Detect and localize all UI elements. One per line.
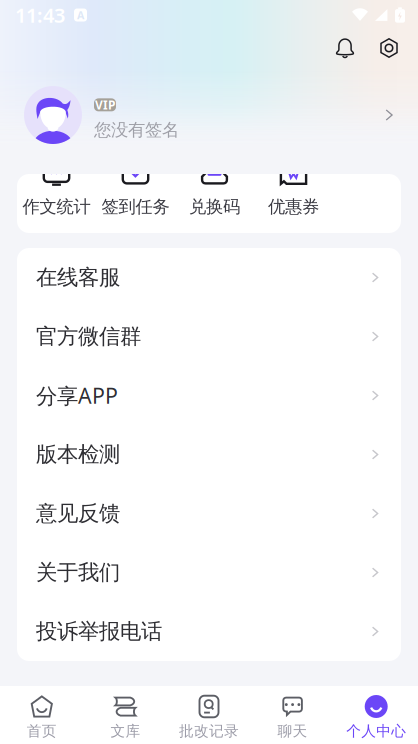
staticText: 投诉举报电话 [36, 618, 162, 645]
button[interactable]: 版本检测 [17, 425, 401, 484]
button[interactable]: Notifications [330, 33, 360, 63]
staticText: 文库 [110, 722, 140, 740]
staticText: 首页 [27, 722, 57, 740]
button[interactable]: 聊天 [251, 695, 334, 735]
button[interactable]: 作文统计 [17, 174, 96, 233]
staticText: 作文统计 [22, 196, 90, 217]
button[interactable]: 投诉举报电话 [17, 602, 401, 661]
staticText: 签到任务 [101, 196, 169, 217]
staticText: 官方微信群 [36, 323, 141, 350]
button[interactable]: 首页 [0, 695, 84, 735]
staticText: 优惠券 [268, 196, 319, 217]
button[interactable]: 文库 [84, 695, 167, 735]
button[interactable]: 分享APP [17, 366, 401, 425]
button[interactable]: 关于我们 [17, 543, 401, 602]
staticText: 关于我们 [36, 559, 120, 586]
button[interactable]: 优惠券 [254, 174, 333, 233]
staticText: 聊天 [278, 722, 308, 740]
button[interactable]: Settings [374, 33, 404, 63]
staticText: A [77, 8, 84, 22]
staticText: 在线客服 [36, 264, 120, 291]
button[interactable]: 兑换码 [175, 174, 254, 233]
button[interactable]: VIP [0, 86, 418, 154]
button[interactable]: 批改记录 [167, 695, 251, 735]
staticText: 兑换码 [189, 196, 240, 217]
button[interactable]: 在线客服 [17, 248, 401, 307]
button[interactable]: 官方微信群 [17, 307, 401, 366]
staticText: 意见反馈 [36, 500, 120, 527]
staticText: 批改记录 [179, 722, 239, 740]
button[interactable]: 个人中心 [334, 695, 418, 735]
button[interactable]: 签到任务 [96, 174, 175, 233]
button[interactable]: 意见反馈 [17, 484, 401, 543]
staticText: 11:43 [15, 2, 65, 28]
staticText: 版本检测 [36, 441, 120, 468]
staticText: 分享APP [36, 381, 118, 410]
staticText: 个人中心 [346, 722, 406, 740]
staticText: VIP [95, 97, 115, 113]
staticText: 您没有签名 [94, 119, 179, 141]
